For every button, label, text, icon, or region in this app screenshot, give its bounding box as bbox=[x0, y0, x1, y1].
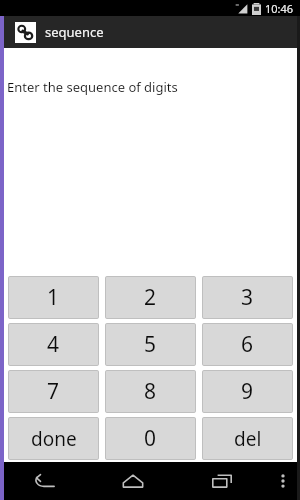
staticText: 4 bbox=[47, 330, 60, 359]
staticText: 3 bbox=[241, 283, 254, 312]
button[interactable]: 6 bbox=[202, 323, 293, 366]
staticText: del bbox=[234, 426, 262, 452]
button[interactable]: 0 bbox=[105, 417, 196, 460]
staticText: sequence bbox=[45, 23, 104, 41]
staticText: 5 bbox=[144, 330, 157, 359]
staticText: 0 bbox=[144, 424, 157, 453]
staticText: 8 bbox=[144, 377, 157, 406]
button[interactable]: 5 bbox=[105, 323, 196, 366]
button[interactable]: 1 bbox=[8, 276, 99, 319]
staticText: 7 bbox=[47, 377, 60, 406]
button[interactable]: 7 bbox=[8, 370, 99, 413]
button[interactable]: 9 bbox=[202, 370, 293, 413]
staticText: 9 bbox=[241, 377, 254, 406]
staticText: 2 bbox=[144, 283, 157, 312]
button[interactable]: Back bbox=[0, 462, 88, 500]
button[interactable]: 3 bbox=[202, 276, 293, 319]
button[interactable]: del bbox=[202, 417, 293, 460]
staticText: done bbox=[31, 426, 77, 452]
button[interactable]: Recents bbox=[177, 462, 266, 500]
button[interactable]: 8 bbox=[105, 370, 196, 413]
staticText: 10:46 bbox=[265, 1, 294, 16]
button[interactable]: More options bbox=[266, 462, 300, 500]
button[interactable]: done bbox=[8, 417, 99, 460]
button[interactable]: Home bbox=[88, 462, 177, 500]
staticText: 6 bbox=[241, 330, 254, 359]
staticText: Enter the sequence of digits bbox=[7, 78, 178, 96]
button[interactable]: 4 bbox=[8, 323, 99, 366]
button[interactable]: 2 bbox=[105, 276, 196, 319]
staticText: 1 bbox=[47, 283, 60, 312]
